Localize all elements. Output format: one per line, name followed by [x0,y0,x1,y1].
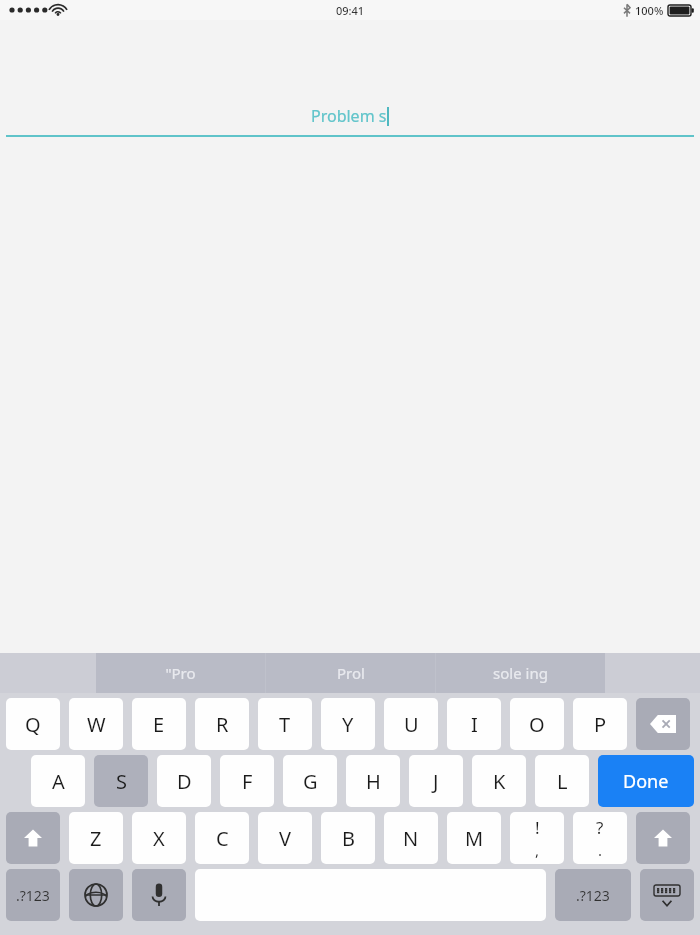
button[interactable]: Done [598,755,694,807]
button[interactable]: ! [510,812,564,864]
staticText: K [493,768,506,795]
button[interactable]: Q [6,698,60,750]
button[interactable]: F [220,755,274,807]
staticText: C [216,825,229,852]
staticText: Prol [337,663,365,683]
button[interactable]: ? [573,812,627,864]
staticText: N [403,825,419,852]
staticText: X [153,825,165,852]
button[interactable]: E [132,698,186,750]
staticText: Done [623,769,669,794]
button[interactable]: Problem s [0,103,700,129]
button[interactable]: L [535,755,589,807]
button[interactable]: Backspace [636,698,690,750]
button[interactable]: Shift [636,812,690,864]
button[interactable]: Hide keyboard [640,869,694,921]
staticText: D [177,768,192,795]
button[interactable]: H [346,755,400,807]
staticText: ? [596,816,604,839]
button[interactable]: R [195,698,249,750]
staticText: 100% [635,3,664,18]
staticText: J [433,768,439,795]
button[interactable]: A [31,755,85,807]
button[interactable]: M [447,812,501,864]
staticText: , [535,840,540,860]
staticText: U [404,711,419,738]
staticText: R [216,711,229,738]
button[interactable]: Z [69,812,123,864]
button[interactable]: C [195,812,249,864]
button[interactable]: T [258,698,312,750]
staticText: G [303,768,318,795]
button[interactable]: "Pro [96,653,265,693]
button[interactable]: S [94,755,148,807]
staticText: B [342,825,355,852]
button[interactable]: U [384,698,438,750]
button[interactable]: J [409,755,463,807]
staticText: S [116,768,127,795]
button[interactable]: .?123 [6,869,60,921]
staticText: 09:41 [336,3,365,18]
staticText: Q [25,711,41,738]
button[interactable]: I [447,698,501,750]
button[interactable]: W [69,698,123,750]
staticText: Z [90,825,102,852]
staticText: F [242,768,253,795]
staticText: . [598,840,603,860]
button[interactable]: K [472,755,526,807]
staticText: T [279,711,291,738]
staticText: I [471,711,478,738]
staticText: H [366,768,381,795]
button[interactable]: Change keyboard language [69,869,123,921]
button[interactable]: Voice input [132,869,186,921]
staticText: P [594,711,607,738]
staticText: Y [342,711,354,738]
button[interactable]: B [321,812,375,864]
button[interactable]: Shift [6,812,60,864]
staticText: V [279,825,291,852]
button[interactable]: P [573,698,627,750]
button[interactable]: Prol [266,653,435,693]
staticText: Problem s [311,105,387,127]
button[interactable]: D [157,755,211,807]
button[interactable]: sole ing [436,653,605,693]
button[interactable]: Y [321,698,375,750]
button[interactable]: N [384,812,438,864]
button[interactable]: V [258,812,312,864]
button[interactable]: G [283,755,337,807]
staticText: W [87,711,106,738]
staticText: O [529,711,545,738]
staticText: sole ing [493,663,548,683]
button[interactable]: O [510,698,564,750]
staticText: ! [535,816,540,839]
staticText: "Pro [165,663,196,683]
staticText: .?123 [16,886,50,905]
staticText: A [52,768,65,795]
staticText: L [557,768,568,795]
staticText: E [153,711,165,738]
button[interactable]: X [132,812,186,864]
staticText: .?123 [576,886,610,905]
staticText: M [465,825,484,852]
button[interactable]: .?123 [555,869,631,921]
